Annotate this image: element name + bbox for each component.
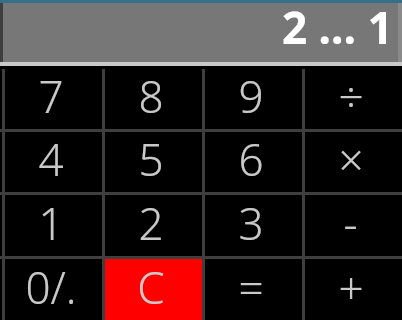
button[interactable]: 5 — [105, 132, 202, 192]
staticText: 1 — [38, 193, 64, 253]
staticText: 3 — [238, 193, 264, 253]
button[interactable]: 8 — [105, 69, 202, 129]
button[interactable]: 9 — [205, 69, 302, 129]
staticText: + — [338, 257, 364, 317]
staticText: = — [238, 257, 264, 317]
staticText: 6 — [238, 129, 264, 189]
button[interactable]: × — [305, 132, 402, 192]
button[interactable]: ÷ — [305, 69, 402, 129]
staticText: 0/. — [25, 257, 77, 317]
staticText: ÷ — [338, 66, 364, 126]
staticText: 9 — [238, 66, 264, 126]
button[interactable]: 6 — [205, 132, 302, 192]
staticText: C — [137, 257, 165, 317]
staticText: 2 — [138, 193, 164, 253]
staticText: 5 — [138, 129, 164, 189]
staticText: × — [338, 129, 364, 189]
button[interactable]: - — [305, 195, 402, 256]
button[interactable]: 4 — [5, 132, 102, 192]
button[interactable]: C — [105, 259, 202, 320]
button[interactable]: 2 — [105, 195, 202, 256]
staticText: 7 — [38, 66, 64, 126]
button[interactable]: + — [305, 259, 402, 320]
staticText: 8 — [138, 66, 164, 126]
button[interactable]: 3 — [205, 195, 302, 256]
staticText: - — [343, 193, 358, 253]
button[interactable]: 0/. — [5, 259, 102, 320]
button[interactable]: = — [205, 259, 302, 320]
staticText: 2 … 1 — [282, 0, 393, 56]
button[interactable]: 7 — [5, 69, 102, 129]
button[interactable]: 1 — [5, 195, 102, 256]
staticText: 4 — [38, 129, 64, 189]
